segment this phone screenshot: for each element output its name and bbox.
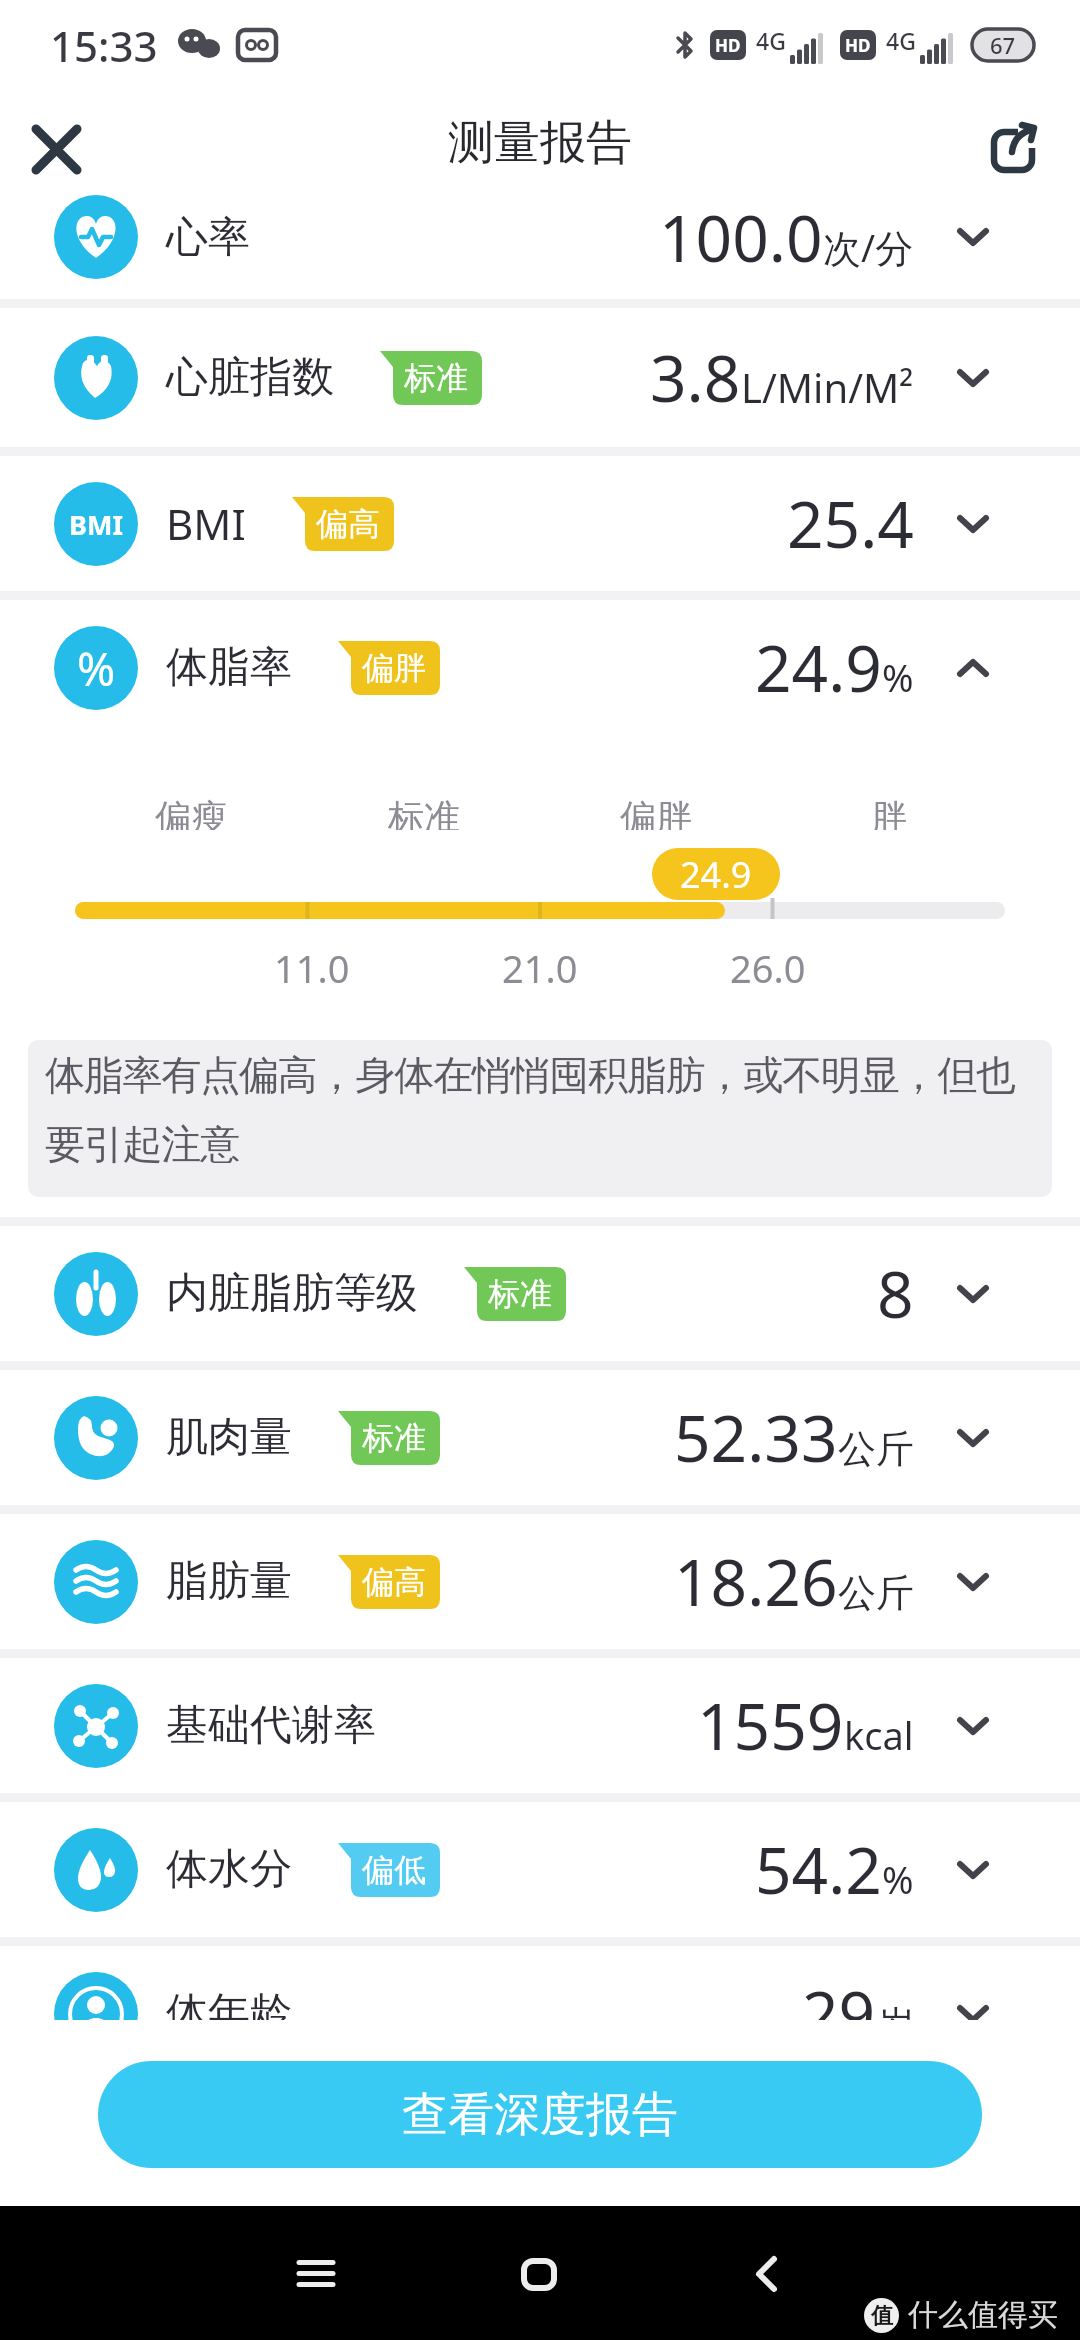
staticText: 11.0 xyxy=(274,942,350,985)
staticText: 1559 xyxy=(697,1682,844,1769)
staticText: 29 xyxy=(802,1970,876,2057)
staticText: 体脂率 xyxy=(166,641,292,694)
staticText: 100.0 xyxy=(659,194,823,281)
staticText: 岁 xyxy=(876,2001,914,2049)
staticText: 54.2 xyxy=(755,1826,882,1913)
button[interactable]: 心脏指数 xyxy=(0,308,1080,447)
staticText: 心脏指数 xyxy=(166,351,334,404)
button[interactable] xyxy=(507,2242,571,2306)
staticText: 52.33 xyxy=(674,1394,838,1481)
staticText: 18.26 xyxy=(674,1538,838,1625)
staticText: 25.4 xyxy=(787,480,914,567)
staticText: 体水分 xyxy=(166,1843,292,1896)
staticText: 公斤 xyxy=(838,1569,914,1617)
staticText: 脂肪量 xyxy=(166,1555,292,1608)
staticText: % xyxy=(882,1853,914,1905)
staticText: 公斤 xyxy=(838,1425,914,1473)
staticText: 查看深度报告 xyxy=(402,2086,678,2144)
staticText: 24.9 xyxy=(755,624,882,711)
button[interactable]: BMI xyxy=(0,456,1080,591)
button[interactable]: % xyxy=(0,600,1080,735)
staticText: 标准 xyxy=(488,1274,552,1314)
staticText: BMI xyxy=(166,495,246,552)
staticText: BMI xyxy=(69,506,123,543)
staticText: 4G xyxy=(886,25,916,56)
staticText: 标准 xyxy=(362,1418,426,1458)
staticText: 15:33 xyxy=(50,17,158,74)
staticText: 偏胖 xyxy=(362,648,426,688)
staticText: 3.8 xyxy=(650,334,741,421)
button[interactable]: 基础代谢率 xyxy=(0,1658,1080,1793)
button[interactable]: 脂肪量 xyxy=(0,1514,1080,1649)
button[interactable]: 肌肉量 xyxy=(0,1370,1080,1505)
button[interactable]: 内脏脂肪等级 xyxy=(0,1226,1080,1361)
staticText: 胖 xyxy=(871,795,907,830)
button[interactable]: 体年龄 xyxy=(0,1946,1080,2081)
staticText: HD xyxy=(715,34,741,57)
staticText: 偏高 xyxy=(316,504,380,544)
staticText: 体脂率有点偏高，身体在悄悄囤积脂肪，或不明显，但也要引起注意 xyxy=(45,1050,1035,1170)
button[interactable]: 心率 xyxy=(0,195,1080,299)
staticText: 26.0 xyxy=(730,942,806,985)
staticText: 4G xyxy=(756,25,786,56)
button[interactable] xyxy=(734,2242,798,2306)
staticText: 标准 xyxy=(404,358,468,398)
staticText: % xyxy=(882,651,914,703)
button[interactable]: 体水分 xyxy=(0,1802,1080,1937)
staticText: 什么值得买 xyxy=(908,2296,1058,2334)
staticText: L/Min/M² xyxy=(741,360,914,414)
staticText: 次/分 xyxy=(823,221,914,273)
staticText: 偏胖 xyxy=(620,795,692,830)
button[interactable] xyxy=(284,2242,348,2306)
staticText: 测量报告 xyxy=(448,114,632,172)
staticText: 值 xyxy=(871,2302,893,2330)
staticText: kcal xyxy=(844,1709,914,1761)
button[interactable] xyxy=(20,113,92,185)
staticText: 偏低 xyxy=(362,1850,426,1890)
staticText: 8 xyxy=(877,1250,914,1337)
staticText: 基础代谢率 xyxy=(166,1699,376,1752)
staticText: % xyxy=(77,637,116,700)
staticText: 偏高 xyxy=(362,1562,426,1602)
staticText: 偏瘦 xyxy=(155,795,227,830)
staticText: 标准 xyxy=(388,795,460,830)
staticText: 24.9 xyxy=(680,850,752,899)
staticText: 体年龄 xyxy=(166,1987,292,2040)
staticText: 内脏脂肪等级 xyxy=(166,1267,418,1320)
staticText: HD xyxy=(845,34,871,57)
button[interactable] xyxy=(980,110,1054,184)
staticText: 肌肉量 xyxy=(166,1411,292,1464)
button[interactable]: 查看深度报告 xyxy=(98,2061,982,2168)
staticText: 21.0 xyxy=(502,942,578,985)
staticText: 心率 xyxy=(166,211,250,264)
staticText: 67 xyxy=(990,30,1016,60)
